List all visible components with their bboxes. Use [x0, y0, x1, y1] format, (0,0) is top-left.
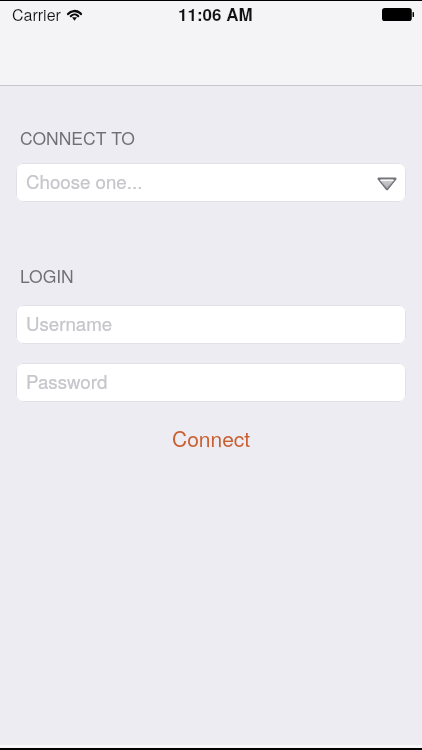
staticText: Username — [26, 310, 113, 337]
button[interactable]: Password — [16, 363, 406, 402]
other: Wi-Fi signal — [66, 8, 83, 21]
staticText: Password — [26, 368, 108, 395]
other: Battery full — [382, 8, 414, 21]
staticText: Choose one... — [26, 168, 143, 195]
button[interactable]: Choose a server — [16, 163, 406, 202]
button[interactable]: Username — [16, 305, 406, 344]
staticText: CONNECT TO — [20, 125, 135, 150]
staticText: Carrier — [12, 3, 61, 26]
staticText: 11:06 AM — [178, 2, 253, 26]
button[interactable]: Connect — [0, 423, 422, 453]
staticText: Connect — [172, 423, 251, 453]
staticText: LOGIN — [20, 263, 74, 288]
